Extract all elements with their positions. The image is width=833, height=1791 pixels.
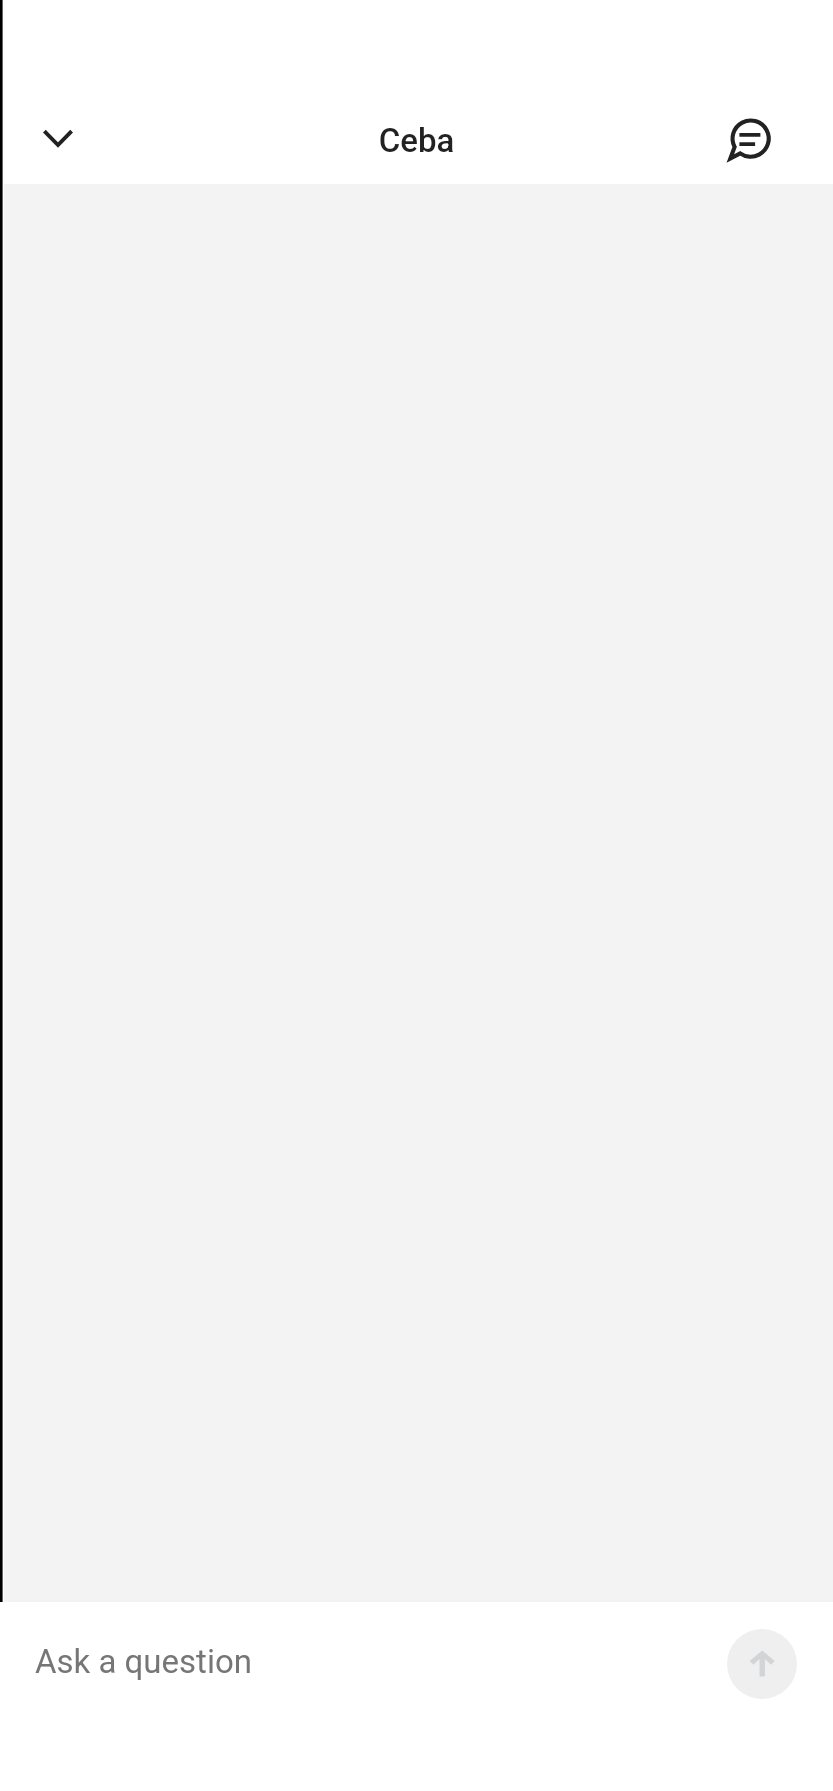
staticText: Ask a question [35,1642,252,1681]
button[interactable]: Collapse [20,101,96,177]
button[interactable]: Send [727,1629,797,1699]
staticText: Ceba [0,121,833,160]
button[interactable]: Ask a question [0,1612,700,1716]
button[interactable]: Chat history [712,101,788,177]
